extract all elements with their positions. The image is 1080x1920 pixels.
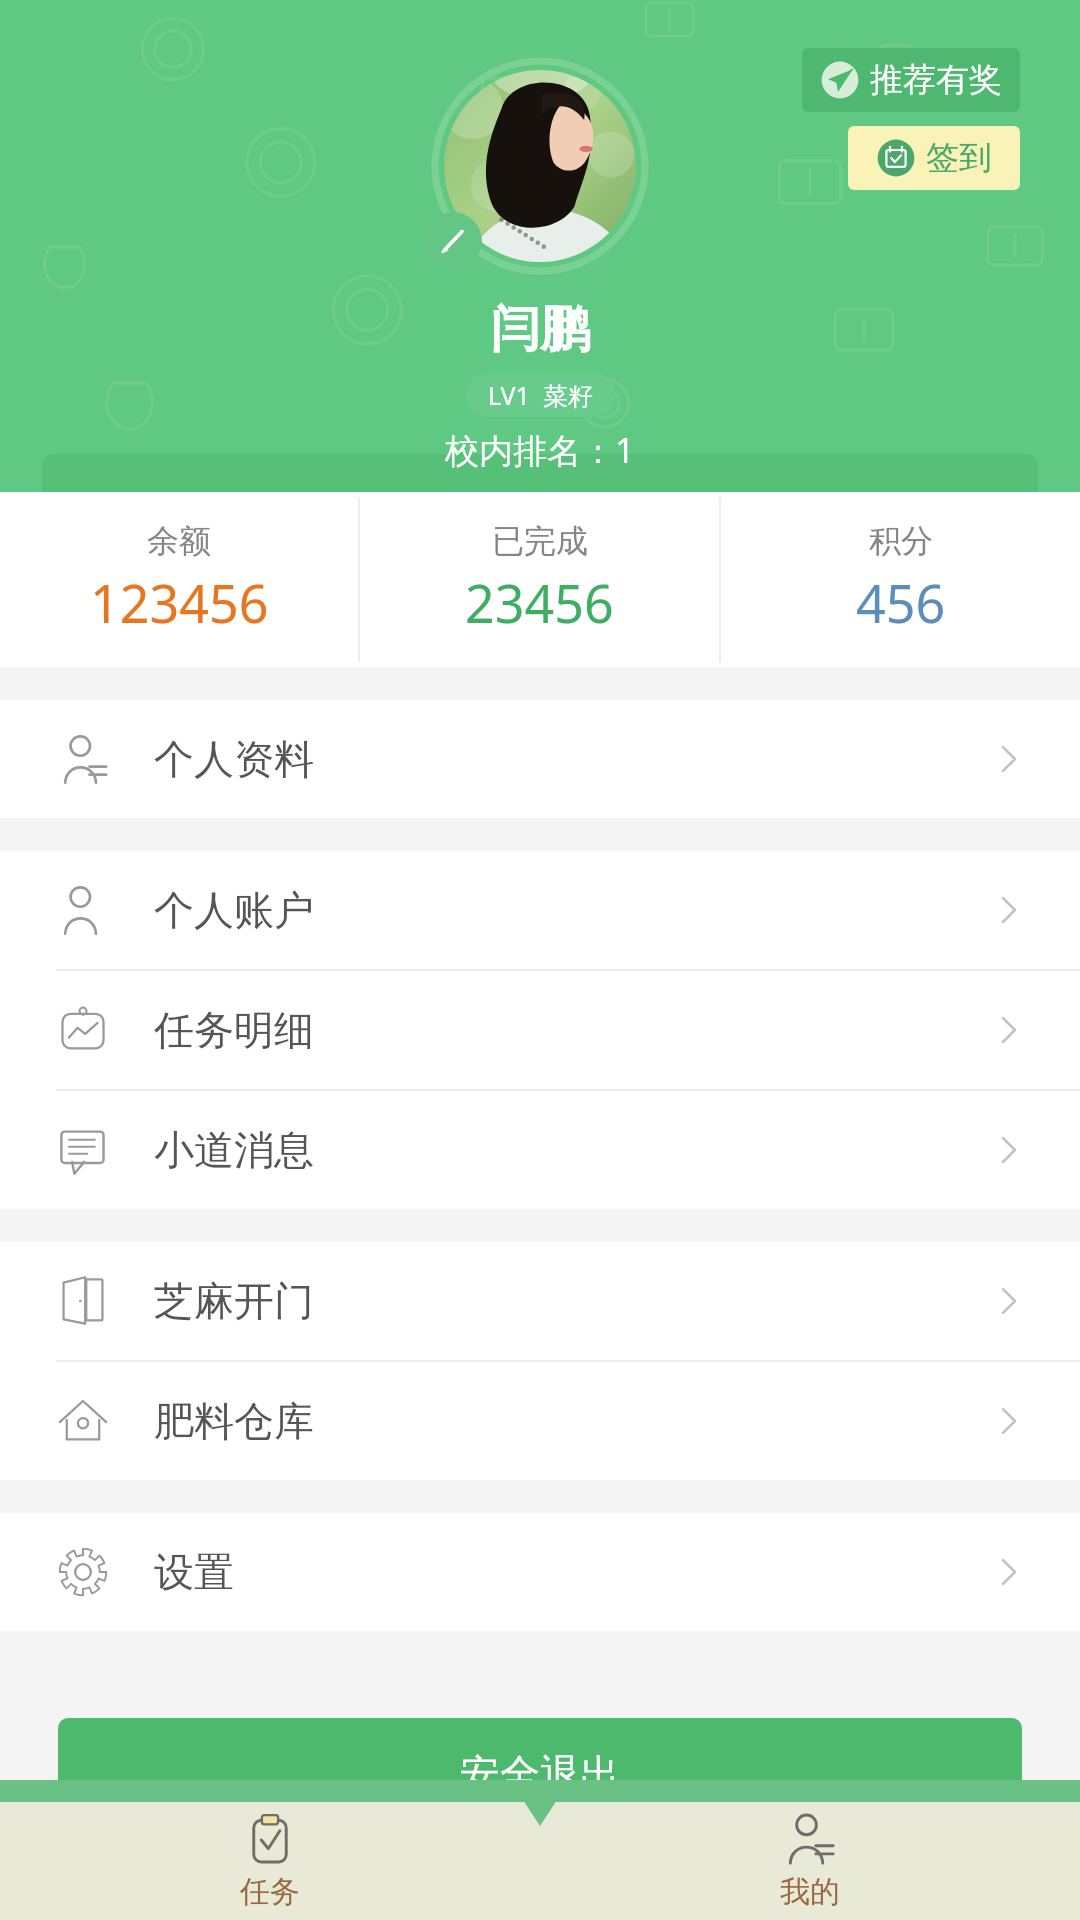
staticText: 闫鹏 xyxy=(490,298,590,361)
button[interactable]: 签到 xyxy=(848,126,1020,190)
staticText: 23456 xyxy=(465,567,614,638)
button[interactable]: 芝麻开门 xyxy=(0,1242,1080,1360)
button[interactable]: 我的 xyxy=(540,1802,1080,1920)
staticText: 肥料仓库 xyxy=(154,1396,314,1446)
staticText: 校内排名：1 xyxy=(445,427,635,473)
staticText: 小道消息 xyxy=(154,1125,314,1175)
button[interactable]: 任务明细 xyxy=(0,971,1080,1089)
button[interactable]: 任务 xyxy=(0,1802,540,1920)
staticText: 余额 xyxy=(147,521,211,561)
button[interactable]: 推荐有奖 xyxy=(802,48,1020,112)
button[interactable]: 肥料仓库 xyxy=(0,1362,1080,1480)
button[interactable]: 已完成 xyxy=(360,492,719,667)
staticText: 安全退出 xyxy=(460,1749,620,1799)
staticText: 我的 xyxy=(780,1873,840,1911)
button[interactable]: 设置 xyxy=(0,1513,1080,1631)
button[interactable]: 余额 xyxy=(0,492,358,667)
staticText: 签到 xyxy=(926,137,992,179)
staticText: 任务 xyxy=(240,1873,300,1911)
staticText: LV1 菜籽 xyxy=(488,378,593,412)
staticText: 个人资料 xyxy=(154,734,314,784)
button[interactable]: 小道消息 xyxy=(0,1091,1080,1209)
staticText: 456 xyxy=(856,567,946,638)
staticText: 个人账户 xyxy=(154,885,314,935)
button[interactable]: 安全退出 xyxy=(58,1718,1022,1830)
staticText: 设置 xyxy=(154,1547,234,1597)
button[interactable]: 个人资料 xyxy=(0,700,1080,818)
button[interactable]: 积分 xyxy=(721,492,1080,667)
button[interactable]: Edit avatar xyxy=(424,212,482,270)
staticText: 积分 xyxy=(869,521,933,561)
staticText: 123456 xyxy=(90,567,269,638)
staticText: 已完成 xyxy=(492,521,588,561)
staticText: 任务明细 xyxy=(154,1005,314,1055)
staticText: 芝麻开门 xyxy=(154,1276,314,1326)
staticText: 推荐有奖 xyxy=(870,59,1002,101)
button[interactable]: 个人账户 xyxy=(0,851,1080,969)
